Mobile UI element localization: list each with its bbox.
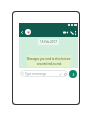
button[interactable]: Voice call bbox=[69, 28, 74, 37]
button[interactable]: Record voice message bbox=[69, 70, 77, 78]
button[interactable] bbox=[25, 29, 31, 35]
staticText: Messages you send to this chat are now bbox=[27, 57, 71, 61]
staticText: Type a message bbox=[25, 72, 46, 76]
staticText: 16 Feb 2017 bbox=[40, 40, 57, 44]
button[interactable]: Video call bbox=[62, 28, 68, 37]
staticText: secured end-to-end. bbox=[37, 62, 62, 66]
button[interactable]: More options bbox=[74, 28, 77, 37]
button[interactable]: 16 Feb 2017 bbox=[38, 39, 59, 45]
button[interactable]: Attach file bbox=[58, 72, 62, 76]
button[interactable]: Type a message bbox=[20, 70, 68, 77]
button[interactable]: Messages you send to this chat are now bbox=[27, 55, 71, 67]
button[interactable]: Camera bbox=[63, 72, 67, 76]
button[interactable]: Back bbox=[20, 28, 24, 37]
